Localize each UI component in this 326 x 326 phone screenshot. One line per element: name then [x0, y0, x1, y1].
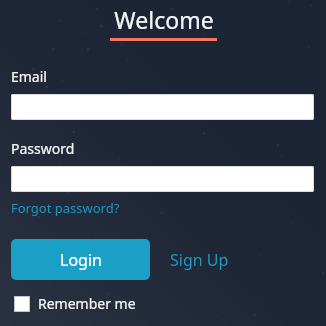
button[interactable]: Sign Up [170, 239, 229, 280]
staticText: Email [11, 67, 47, 86]
staticText: Remember me [38, 294, 136, 313]
button[interactable]: Login [11, 239, 150, 280]
staticText: Sign Up [170, 249, 229, 271]
staticText: Forgot password? [11, 199, 120, 217]
button[interactable] [11, 166, 314, 192]
staticText: Password [11, 139, 75, 158]
button[interactable]: Forgot password? [11, 199, 120, 217]
button[interactable] [11, 94, 314, 120]
staticText: Login [60, 249, 102, 271]
staticText: Welcome [114, 4, 214, 35]
button[interactable]: Remember me [11, 294, 136, 313]
